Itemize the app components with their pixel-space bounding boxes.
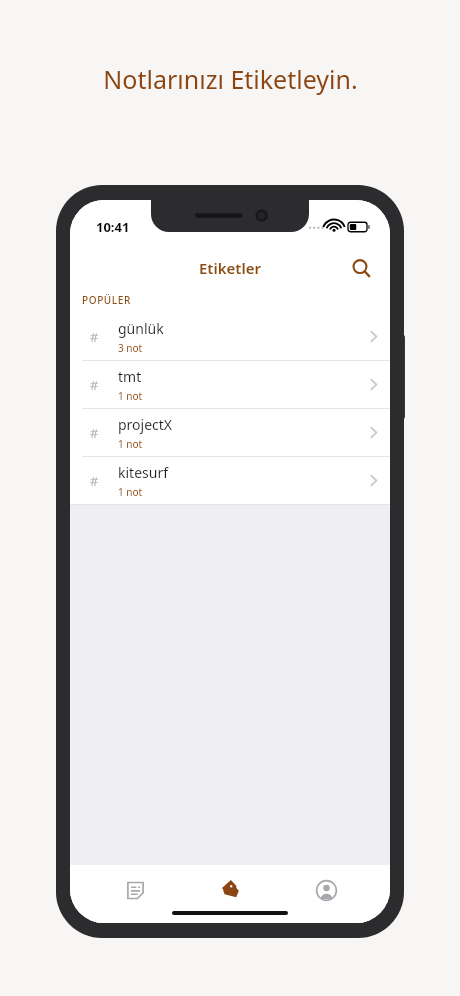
- staticText: #: [90, 376, 99, 394]
- button[interactable]: Profile: [295, 873, 357, 907]
- staticText: kitesurf: [118, 463, 168, 482]
- staticText: 1 not: [118, 485, 143, 499]
- staticText: 10:41: [96, 218, 130, 236]
- staticText: 3 not: [118, 341, 143, 355]
- button[interactable]: Tags: [199, 873, 261, 907]
- staticText: POPÜLER: [82, 293, 131, 307]
- button[interactable]: Notes: [104, 873, 166, 907]
- button[interactable]: Search: [344, 251, 378, 285]
- staticText: #: [90, 328, 99, 346]
- button[interactable]: #: [70, 313, 390, 360]
- button[interactable]: #: [70, 457, 390, 504]
- staticText: günlük: [118, 319, 164, 338]
- button[interactable]: #: [70, 361, 390, 408]
- staticText: projectX: [118, 415, 173, 434]
- staticText: 1 not: [118, 389, 143, 403]
- staticText: #: [90, 424, 99, 442]
- staticText: Etiketler: [199, 258, 261, 278]
- staticText: 1 not: [118, 437, 143, 451]
- staticText: Notlarınızı Etiketleyin.: [103, 62, 358, 96]
- button[interactable]: #: [70, 409, 390, 456]
- staticText: #: [90, 472, 99, 490]
- staticText: tmt: [118, 367, 142, 386]
